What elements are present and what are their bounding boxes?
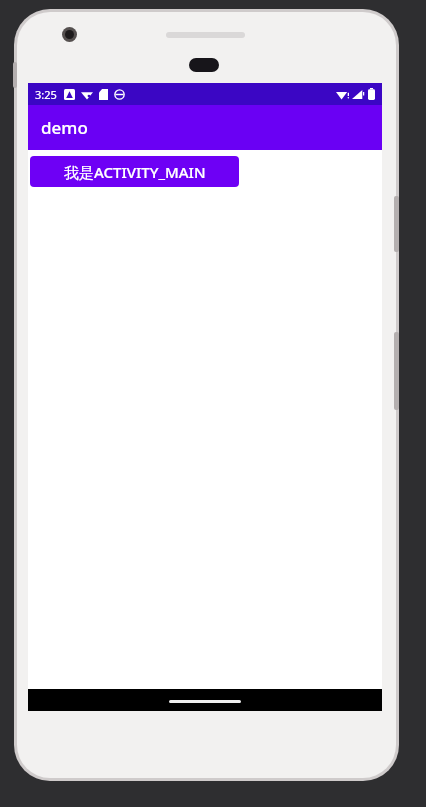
button[interactable]: 我是ACTIVITY_MAIN	[30, 156, 239, 187]
staticText: 3:25	[35, 87, 57, 102]
staticText: 我是ACTIVITY_MAIN	[64, 162, 206, 182]
button[interactable]: Home gesture bar	[169, 700, 241, 703]
staticText: demo	[41, 116, 88, 139]
